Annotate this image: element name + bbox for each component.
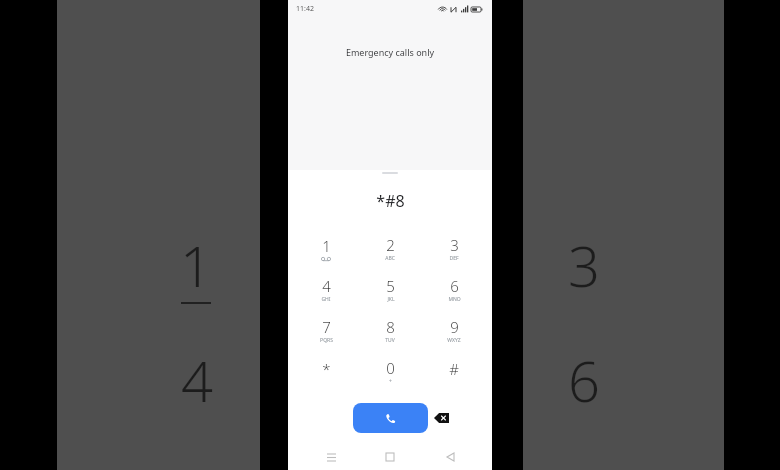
staticText: 1: [322, 236, 331, 256]
staticText: 2: [386, 235, 395, 255]
button[interactable]: Backspace: [431, 411, 451, 425]
staticText: MNO: [448, 296, 461, 303]
staticText: TUV: [385, 337, 395, 344]
button[interactable]: 5: [364, 269, 416, 310]
staticText: DEF: [449, 255, 459, 262]
button[interactable]: 6: [428, 269, 480, 310]
staticText: 5: [386, 276, 395, 296]
button[interactable]: 9: [428, 310, 480, 351]
button[interactable]: Back: [433, 444, 467, 470]
button[interactable]: 4: [300, 269, 352, 310]
button[interactable]: 8: [364, 310, 416, 351]
staticText: ABC: [385, 255, 395, 262]
staticText: 0: [386, 358, 395, 378]
button[interactable]: 7: [300, 310, 352, 351]
staticText: 11:42: [296, 4, 314, 14]
button[interactable]: Recents: [314, 444, 348, 470]
staticText: 9: [450, 317, 459, 337]
staticText: WXYZ: [447, 337, 461, 344]
staticText: GHI: [321, 296, 331, 303]
button[interactable]: 1: [300, 228, 352, 269]
button[interactable]: *: [300, 351, 352, 392]
staticText: 6: [450, 276, 459, 296]
staticText: JKL: [387, 296, 395, 303]
button[interactable]: Call: [353, 403, 428, 433]
staticText: Emergency calls only: [288, 46, 492, 58]
staticText: PQRS: [320, 337, 333, 344]
staticText: +: [389, 378, 392, 385]
button[interactable]: 3: [428, 228, 480, 269]
button[interactable]: 0: [364, 351, 416, 392]
staticText: 3: [568, 227, 600, 303]
staticText: 6: [568, 342, 600, 418]
staticText: *: [322, 359, 331, 379]
button[interactable]: Home: [373, 444, 407, 470]
staticText: #: [449, 359, 459, 379]
staticText: 3: [450, 235, 459, 255]
staticText: 7: [322, 317, 331, 337]
button[interactable]: 2: [364, 228, 416, 269]
staticText: 1: [180, 227, 212, 303]
staticText: *#8: [376, 190, 405, 212]
button[interactable]: #: [428, 351, 480, 392]
staticText: 8: [386, 317, 395, 337]
staticText: 4: [322, 276, 331, 296]
staticText: 4: [181, 342, 213, 418]
